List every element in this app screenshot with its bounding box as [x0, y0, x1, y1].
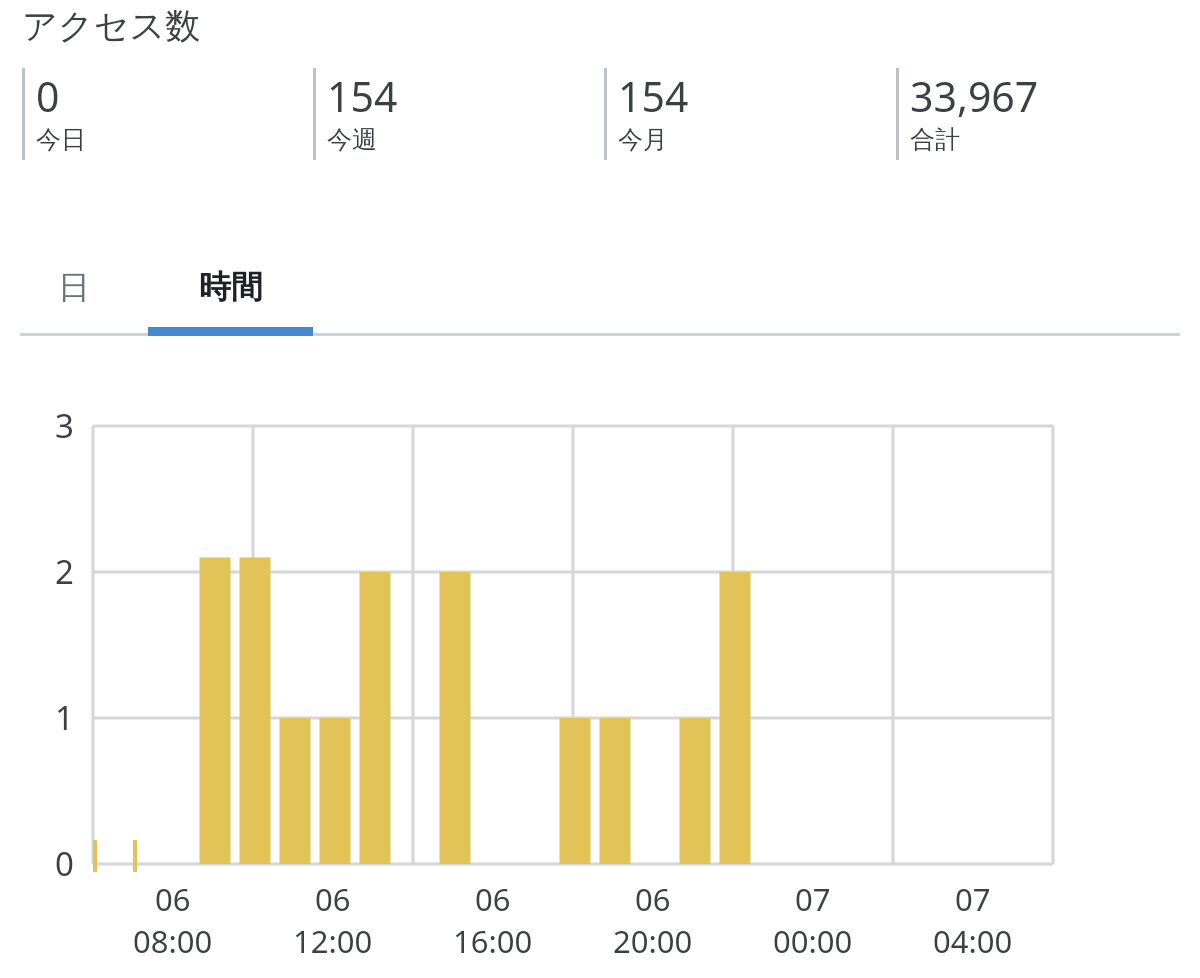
staticText: 12:00: [293, 920, 373, 962]
staticText: 08:00: [133, 920, 213, 962]
staticText: 04:00: [933, 920, 1013, 962]
staticText: アクセス数: [22, 4, 201, 48]
staticText: 0: [55, 841, 74, 886]
staticText: 今日: [36, 124, 86, 155]
staticText: 合計: [910, 124, 960, 155]
staticText: 07: [955, 878, 991, 920]
staticText: 20:00: [613, 920, 693, 962]
button[interactable]: 33,967: [896, 68, 1188, 160]
button[interactable]: 時間: [148, 238, 313, 336]
staticText: 06: [635, 878, 671, 920]
button[interactable]: 154: [313, 68, 604, 160]
staticText: 3: [55, 403, 74, 448]
staticText: 0: [36, 68, 60, 124]
staticText: 33,967: [910, 68, 1039, 124]
button[interactable]: 0: [22, 68, 313, 160]
staticText: 06: [155, 878, 191, 920]
staticText: 06: [475, 878, 511, 920]
staticText: 日: [58, 267, 90, 307]
staticText: 07: [795, 878, 831, 920]
staticText: 154: [327, 68, 398, 124]
staticText: 2: [55, 549, 74, 594]
staticText: 16:00: [453, 920, 533, 962]
staticText: 今月: [618, 124, 668, 155]
staticText: 時間: [199, 267, 263, 307]
staticText: 06: [315, 878, 351, 920]
staticText: 今週: [327, 124, 377, 155]
staticText: 00:00: [773, 920, 853, 962]
button[interactable]: 154: [604, 68, 896, 160]
staticText: 154: [618, 68, 689, 124]
button[interactable]: 日: [0, 238, 148, 336]
staticText: 1: [55, 695, 74, 740]
